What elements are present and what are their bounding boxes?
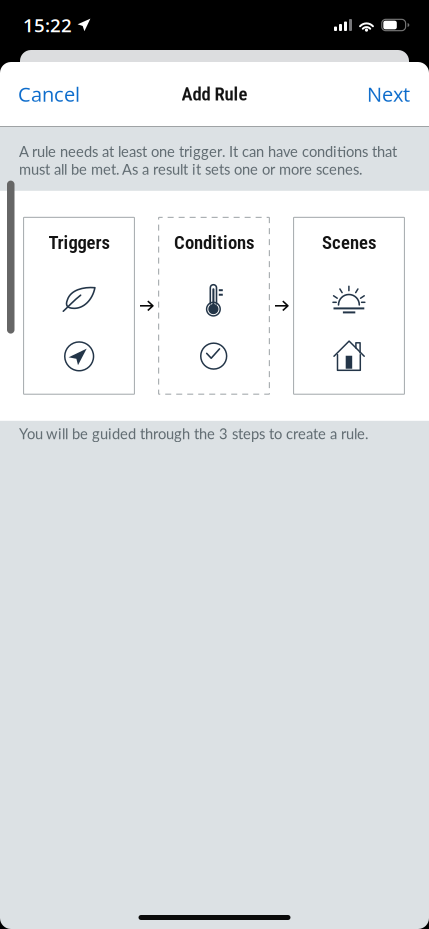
staticText: Cancel — [18, 80, 80, 108]
staticText: A rule needs at least one trigger. It ca… — [19, 143, 397, 178]
button[interactable]: Conditions — [158, 217, 270, 395]
staticText: Scenes — [322, 232, 376, 254]
staticText: Add Rule — [181, 83, 247, 105]
staticText: 15:22 — [23, 12, 72, 38]
staticText: You will be guided through the 3 steps t… — [19, 425, 368, 442]
button[interactable]: Triggers — [23, 217, 135, 395]
button[interactable]: Cancel — [0, 62, 96, 126]
button[interactable]: Next — [351, 62, 429, 126]
button[interactable]: Scenes — [293, 217, 405, 395]
staticText: Conditions — [174, 232, 254, 254]
staticText: Next — [367, 80, 410, 108]
staticText: Triggers — [48, 232, 109, 254]
